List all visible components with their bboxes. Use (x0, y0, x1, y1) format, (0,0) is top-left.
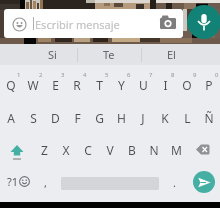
staticText: J (141, 110, 145, 126)
staticText: 1 (17, 71, 21, 79)
button[interactable]: Shift (6, 137, 28, 163)
staticText: I (163, 77, 168, 93)
staticText: R (73, 77, 81, 93)
staticText: N (149, 142, 159, 158)
staticText: 3 (61, 71, 65, 79)
button[interactable]: F (66, 105, 88, 131)
staticText: 9 (193, 71, 197, 79)
staticText: E (52, 77, 59, 93)
button[interactable]: C (77, 137, 99, 163)
staticText: U (139, 77, 148, 93)
button[interactable]: H (110, 105, 132, 131)
button[interactable]: L (176, 105, 198, 131)
staticText: S (30, 110, 37, 126)
staticText: Q (6, 77, 16, 93)
button[interactable]: X (55, 137, 77, 163)
button[interactable]: S (22, 105, 44, 131)
button[interactable]: Backspace (192, 137, 214, 163)
staticText: 8 (171, 71, 175, 79)
staticText: A (7, 110, 15, 126)
button[interactable]: O (176, 72, 198, 98)
staticText: Ñ (204, 110, 214, 126)
button[interactable]: W (22, 72, 44, 98)
staticText: V (106, 142, 114, 158)
button[interactable]: Z (33, 137, 55, 163)
button[interactable]: P (198, 72, 220, 98)
button[interactable]: J (132, 105, 154, 131)
other: Emoji (12, 17, 27, 32)
staticText: 7 (149, 71, 153, 79)
staticText: , (44, 175, 47, 190)
staticText: ?1 (7, 174, 19, 189)
button[interactable]: R (66, 72, 88, 98)
staticText: F (74, 110, 81, 126)
staticText: C (84, 142, 92, 158)
staticText: Z (41, 142, 48, 158)
staticText: . (173, 175, 176, 190)
button[interactable]: Record voice message (187, 5, 220, 39)
staticText: W (27, 77, 39, 93)
staticText: El (167, 47, 176, 62)
staticText: T (96, 77, 103, 93)
staticText: D (51, 110, 60, 126)
staticText: X (62, 142, 70, 158)
button[interactable]: I (154, 72, 176, 98)
staticText: 5 (105, 71, 109, 79)
button[interactable]: N (143, 137, 165, 163)
staticText: P (205, 77, 213, 93)
staticText: Si (48, 47, 57, 62)
button[interactable]: A (0, 105, 22, 131)
staticText: 2 (39, 71, 43, 79)
staticText: O (182, 77, 192, 93)
button[interactable]: B (121, 137, 143, 163)
button[interactable]: V (99, 137, 121, 163)
button[interactable]: , (34, 169, 56, 195)
button[interactable]: T (88, 72, 110, 98)
staticText: Escribir mensaje (35, 17, 120, 32)
button[interactable]: Si (0, 44, 77, 65)
button[interactable]: ?1 (3, 170, 33, 192)
staticText: B (128, 142, 136, 158)
button[interactable]: El (141, 44, 220, 65)
button[interactable]: U (132, 72, 154, 98)
staticText: K (161, 110, 169, 126)
staticText: 4 (83, 71, 87, 79)
staticText: 0 (215, 71, 219, 79)
button[interactable]: . (163, 169, 185, 195)
staticText: M (171, 142, 182, 158)
staticText: 6 (127, 71, 131, 79)
staticText: H (117, 110, 126, 126)
button[interactable]: Send (193, 171, 215, 193)
staticText: Y (118, 77, 125, 93)
button[interactable]: D (44, 105, 66, 131)
staticText: L (184, 110, 191, 126)
other: Camera (160, 15, 176, 29)
button[interactable]: K (154, 105, 176, 131)
button[interactable]: E (44, 72, 66, 98)
button[interactable]: G (88, 105, 110, 131)
button[interactable]: M (165, 137, 187, 163)
button[interactable]: Q (0, 72, 22, 98)
button[interactable]: Emoji (4, 9, 183, 38)
button[interactable]: Te (77, 44, 141, 65)
staticText: Te (103, 47, 115, 62)
staticText: G (95, 110, 104, 126)
button[interactable]: Ñ (198, 105, 220, 131)
button[interactable]: Y (110, 72, 132, 98)
